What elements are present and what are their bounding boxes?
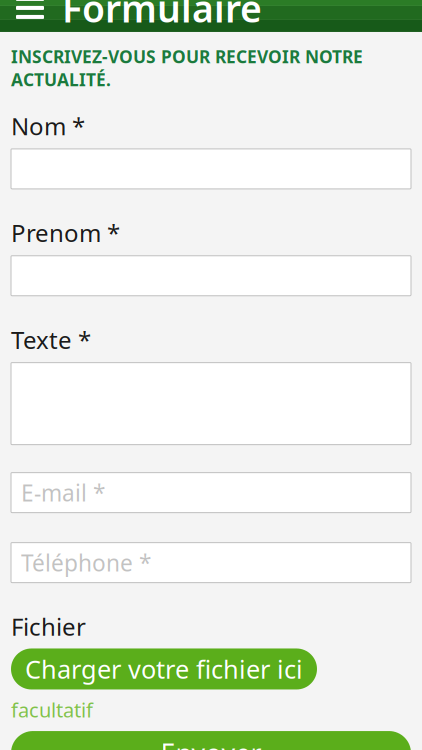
staticText: Envoyer [160,735,261,750]
staticText: Texte * [11,324,91,356]
staticText: Formulaire [62,0,262,33]
button[interactable]: Charger votre fichier ici [11,648,317,689]
staticText: facultatif [11,696,93,723]
staticText: Charger votre fichier ici [25,652,303,686]
staticText: Fichier [11,611,86,642]
staticText: Nom * [11,110,85,142]
button[interactable]: Envoyer [11,731,411,750]
staticText: Téléphone * [21,548,151,578]
button[interactable]: Menu [12,0,48,25]
staticText: E-mail * [21,478,105,508]
staticText: Prenom * [11,217,120,249]
staticText: INSCRIVEZ-VOUS POUR RECEVOIR NOTRE ACTUA… [11,45,363,91]
